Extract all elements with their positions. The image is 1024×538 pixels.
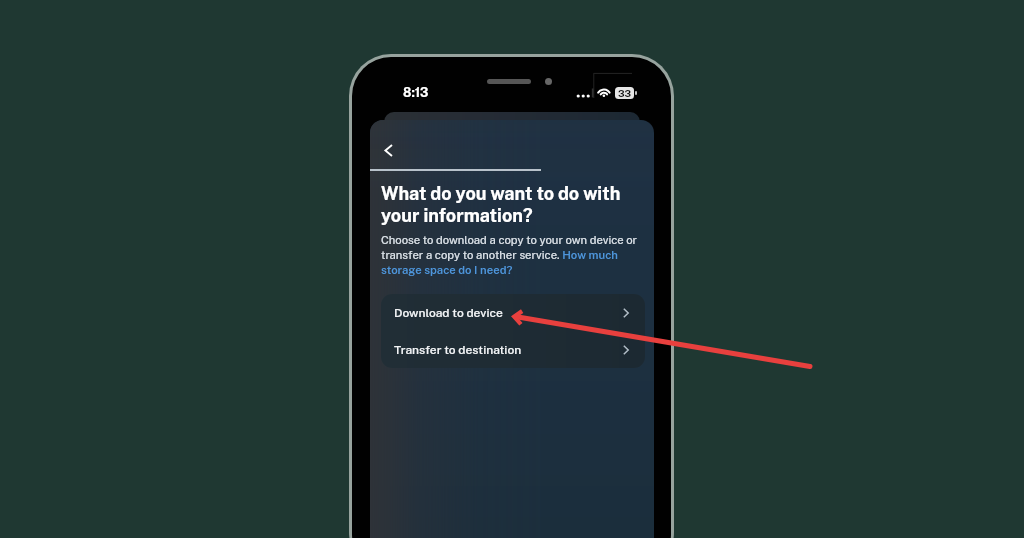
staticText: Choose to download a copy to your own de… — [381, 233, 643, 276]
staticText: What do you want to do with your informa… — [381, 183, 621, 226]
button[interactable]: Download to device — [381, 294, 645, 331]
staticText: 8:13 — [403, 85, 429, 100]
staticText: 33 — [618, 87, 632, 99]
staticText: Download to device — [394, 306, 503, 320]
button[interactable]: Back — [374, 136, 402, 164]
staticText: Transfer to destination — [394, 343, 522, 357]
button[interactable]: Transfer to destination — [381, 331, 645, 368]
